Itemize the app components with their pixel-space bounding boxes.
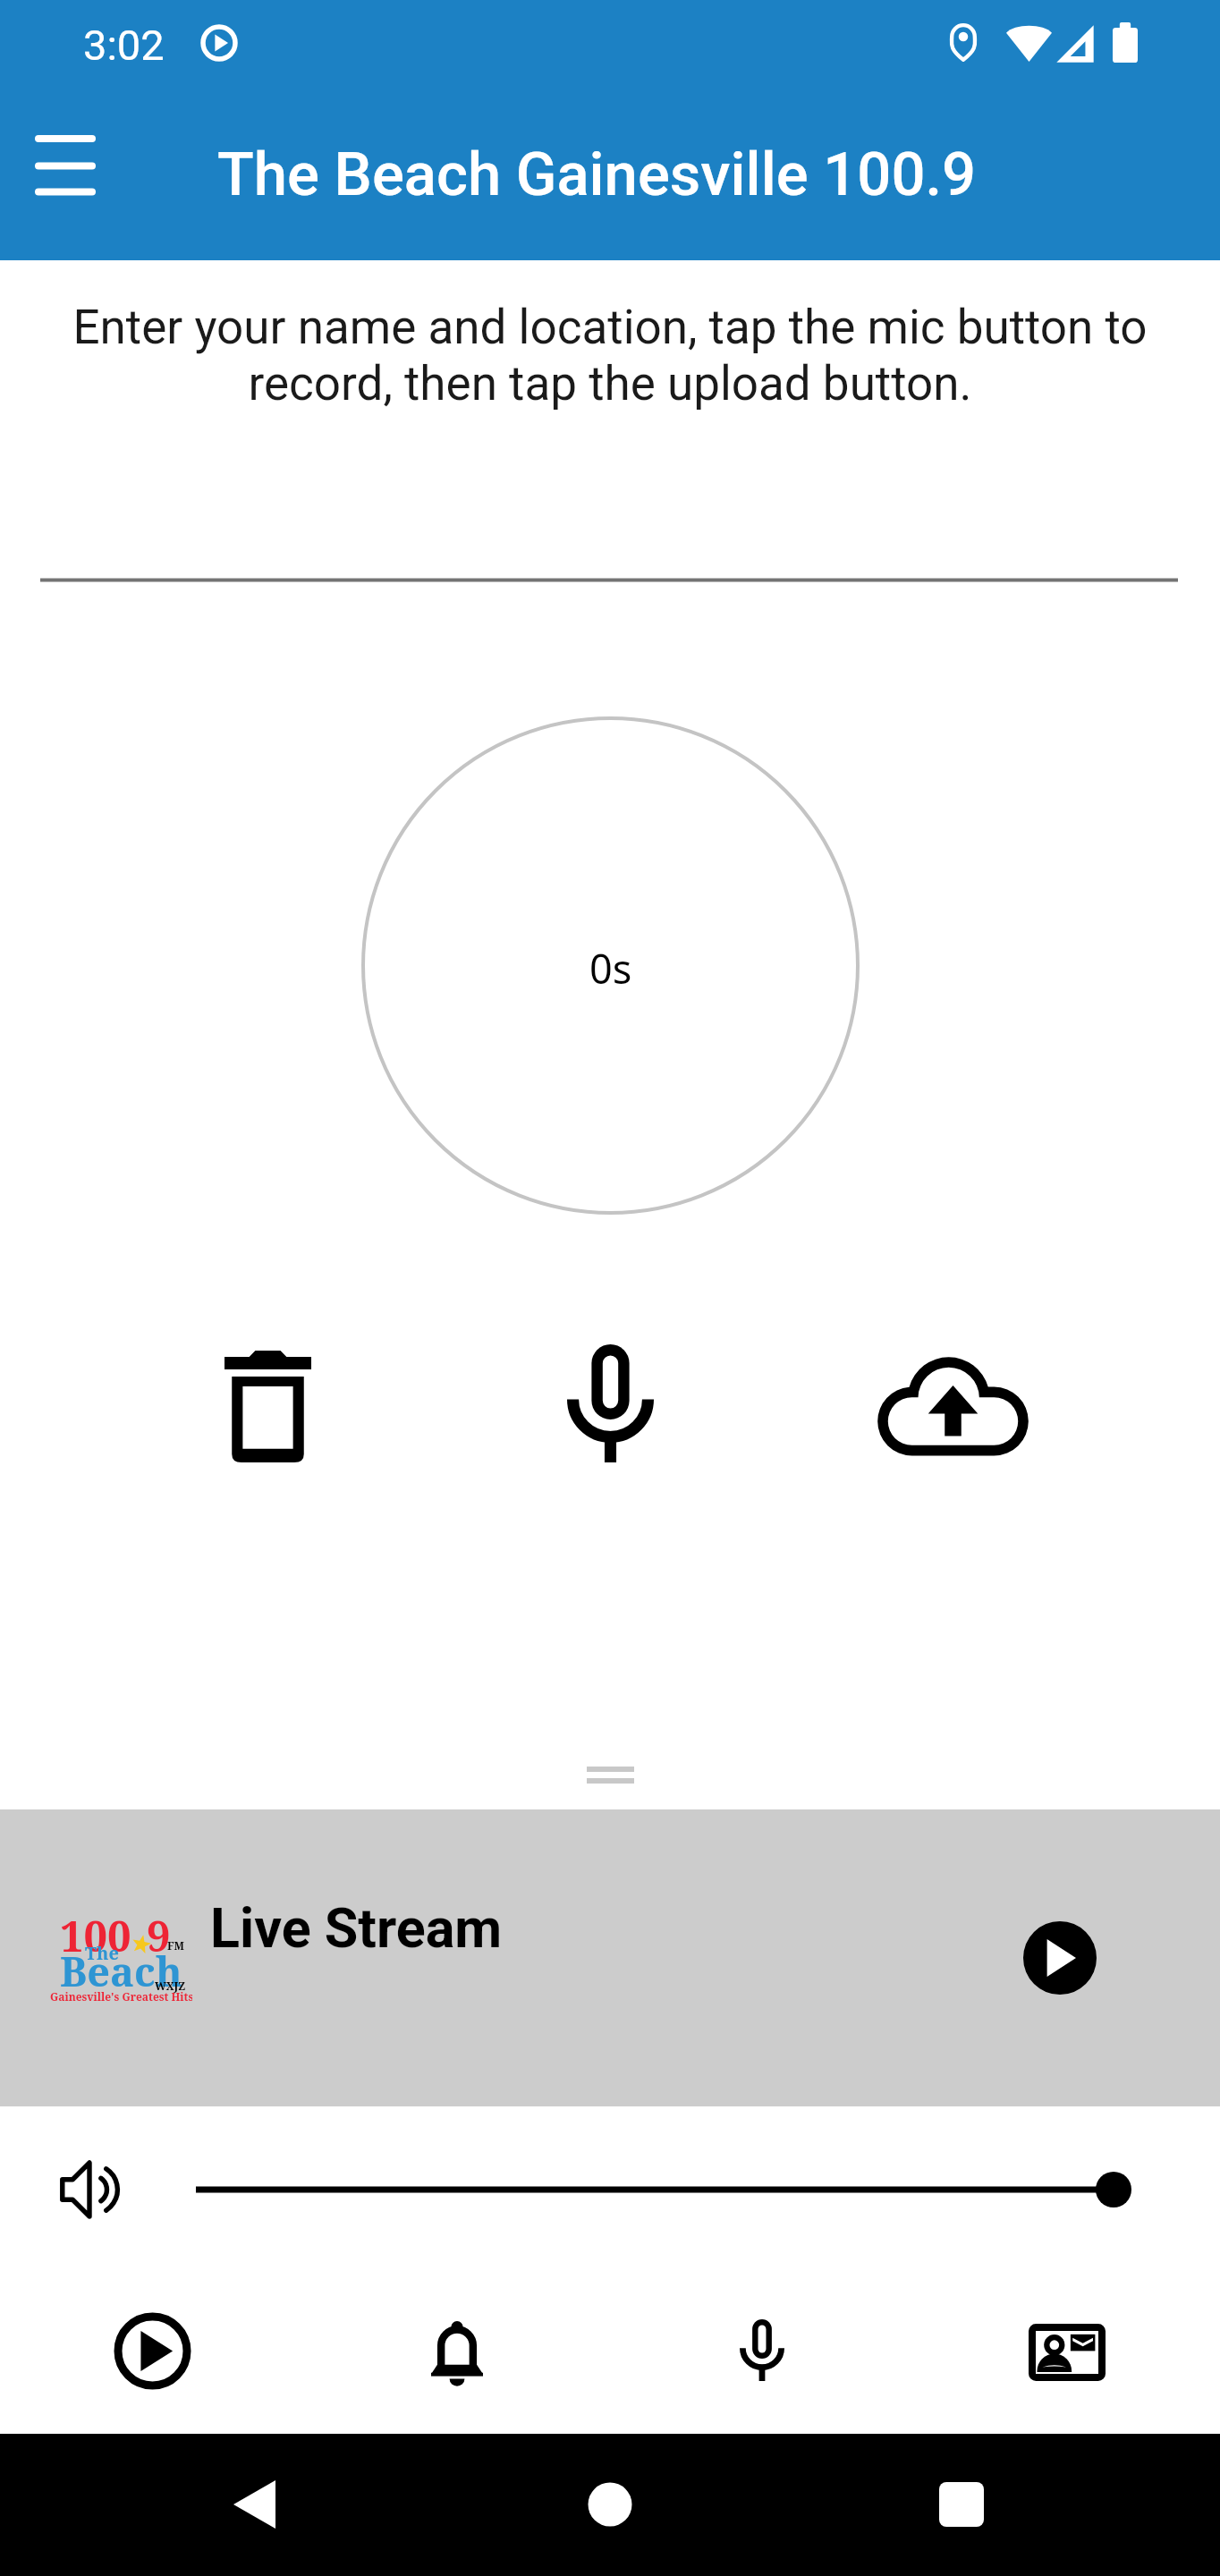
staticText: FM	[167, 1938, 184, 1953]
button[interactable]: Name and location	[0, 478, 1220, 585]
button[interactable]: Play	[76, 2255, 229, 2434]
button[interactable]: Open navigation menu	[12, 112, 119, 219]
staticText: Live Stream	[210, 1896, 503, 1960]
staticText: 100	[60, 1907, 131, 1964]
staticText: Gainesville's Greatest Hits	[50, 1989, 192, 2004]
button[interactable]: Play live stream	[1023, 1921, 1097, 1995]
button[interactable]: Home	[535, 2434, 685, 2576]
staticText: 9	[147, 1907, 171, 1964]
staticText: The Beach Gainesville 100.9	[217, 140, 977, 210]
button[interactable]: Volume	[0, 2163, 1220, 2216]
button[interactable]: Back	[180, 2434, 330, 2576]
staticText: 3:02	[83, 21, 165, 70]
staticText: WXJZ	[155, 1979, 186, 1993]
button[interactable]: Record	[686, 2255, 839, 2434]
button[interactable]: Delete recording	[207, 1345, 329, 1468]
button[interactable]: Record	[549, 1342, 672, 1464]
staticText: The	[85, 1941, 119, 1965]
staticText: 0s	[589, 941, 632, 996]
button[interactable]: Contact	[991, 2255, 1144, 2434]
button[interactable]: Alerts	[381, 2255, 534, 2434]
button[interactable]: Upload recording	[861, 1344, 1044, 1467]
button[interactable]: Recording timer	[361, 716, 860, 1215]
button[interactable]: Recent apps	[886, 2434, 1037, 2576]
staticText: Beach	[60, 1944, 182, 1998]
staticText: Enter your name and location, tap the mi…	[50, 300, 1170, 411]
button[interactable]: Live Stream	[0, 1809, 1220, 2106]
